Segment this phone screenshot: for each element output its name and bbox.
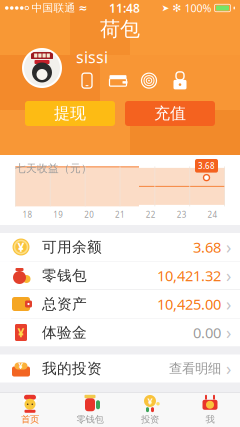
staticText: 0.00 [193,323,221,342]
staticText: sissi [76,46,108,68]
button[interactable]: 零钱包 [60,393,120,426]
staticText: 投资 [141,414,159,425]
staticText: 3.68 [193,237,221,257]
staticText: 23 [177,209,187,220]
staticText: 首页 [21,414,39,425]
staticText: › [226,235,231,258]
button[interactable]: ¥ [120,393,180,426]
button[interactable]: 安全锁 [169,72,191,90]
staticText: 我 [205,414,214,425]
staticText: 21 [115,209,125,220]
button[interactable]: ¥ [0,233,240,261]
staticText: 11:48 [109,0,140,16]
staticText: ¥ [17,239,24,255]
button[interactable]: 银行卡 [107,72,129,90]
staticText: › [226,292,231,315]
staticText: 提现 [54,104,86,123]
staticText: 22 [146,209,156,220]
staticText: 查看明细 [169,360,221,377]
staticText: 七天收益（元） [15,162,92,175]
button[interactable]: ¥ [0,354,240,382]
staticText: ✻ [172,2,181,14]
staticText: ¥ [17,324,24,340]
button[interactable]: 头像 [22,48,62,88]
staticText: 3.68 [198,160,215,171]
button[interactable]: 零钱包 [0,261,240,290]
button[interactable]: 总资产 [0,290,240,318]
staticText: 体验金 [42,323,87,341]
staticText: ¥ [18,361,23,371]
staticText: 零钱包 [42,266,87,284]
staticText: 荷包 [100,17,140,41]
staticText: 可用余额 [42,238,102,256]
button[interactable]: 提现 [25,101,115,126]
staticText: ➤ [161,3,169,13]
staticText: › [226,357,231,380]
staticText: › [226,264,231,287]
staticText: 18 [22,209,32,220]
button[interactable]: 手机 [76,72,98,90]
staticText: ¥ [147,395,152,407]
staticText: 零钱包 [76,414,103,425]
button[interactable]: 指纹 [138,72,160,90]
staticText: 20 [84,209,94,220]
staticText: 10,425.00 [157,294,221,314]
staticText: 总资产 [42,295,87,313]
staticText: 100% [184,1,211,15]
button[interactable]: ¥ [0,318,240,346]
staticText: 中国联通 [31,1,75,14]
staticText: 19 [53,209,63,220]
staticText: › [226,321,231,344]
staticText: 充值 [154,104,186,123]
staticText: 10,421.32 [157,266,221,285]
button[interactable]: 充值 [125,101,215,126]
staticText: 24 [208,209,218,220]
button[interactable]: 首页 [0,393,60,426]
button[interactable]: 我 [180,393,240,426]
staticText: 我的投资 [42,359,102,377]
staticText: ≈ [78,2,87,14]
